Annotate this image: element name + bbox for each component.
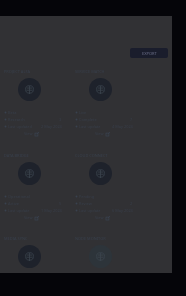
staticText: Pending [79,194,95,199]
staticText: 6 May 2024 [112,208,133,213]
staticText: View [24,215,33,220]
staticText: MEDIA SYNC [4,236,28,241]
button[interactable]: View [95,131,110,136]
staticText: 2 [130,201,133,206]
staticText: EXPORT [142,51,157,56]
staticText: SERVICE MATCH [75,69,105,74]
staticText: Last updated [8,124,32,129]
button[interactable]: View [24,131,39,136]
staticText: 5 [59,201,62,206]
button[interactable]: MEDIA SYNC [0,225,71,273]
staticText: NODE MONITOR [75,236,106,241]
staticText: Last update [79,124,101,129]
staticText: Review [79,201,92,206]
staticText: Complete [79,117,97,122]
staticText: View [95,215,104,220]
staticText: Active [8,201,19,206]
staticText: Beta [8,110,17,115]
staticText: PROJECT ALFA [4,69,30,74]
staticText: 1 May 2024 [41,208,62,213]
button[interactable]: View [95,215,110,220]
staticText: CLOUD CONNECT [75,153,108,158]
button[interactable]: SERVICE MATCH [71,58,142,136]
staticText: 3 [59,117,62,122]
staticText: 4 May 2024 [112,124,133,129]
staticText: Last update [8,208,30,213]
staticText: Operational [8,194,30,199]
staticText: 7 [130,117,133,122]
staticText: View [24,131,33,136]
staticText: Last update [79,208,101,213]
button[interactable]: DATA BRIDGE [0,142,71,220]
button[interactable]: PROJECT ALFA [0,58,71,136]
staticText: DATA BRIDGE [4,153,29,158]
staticText: 2 May 2024 [41,124,62,129]
staticText: View [95,131,104,136]
button[interactable]: CLOUD CONNECT [71,142,142,220]
button[interactable]: View [24,215,39,220]
button[interactable]: EXPORT [130,48,168,58]
staticText: Live [79,110,87,115]
staticText: Research [8,117,25,122]
